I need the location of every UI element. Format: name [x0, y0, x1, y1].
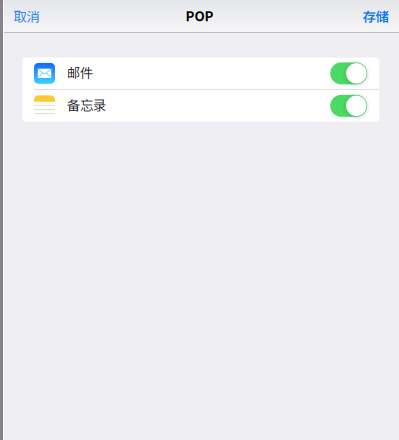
staticText: 取消	[13, 6, 39, 25]
button[interactable]: 邮件	[330, 62, 367, 84]
staticText: 存储	[362, 6, 388, 25]
staticText: 备忘录	[67, 95, 106, 114]
button[interactable]: 邮件	[22, 57, 379, 89]
staticText: POP	[185, 6, 213, 25]
staticText: 邮件	[67, 62, 93, 82]
button[interactable]: 备忘录	[22, 90, 379, 122]
button[interactable]: 取消	[0, 0, 51, 32]
button[interactable]: 备忘录	[330, 95, 367, 117]
button[interactable]: 存储	[350, 0, 399, 32]
